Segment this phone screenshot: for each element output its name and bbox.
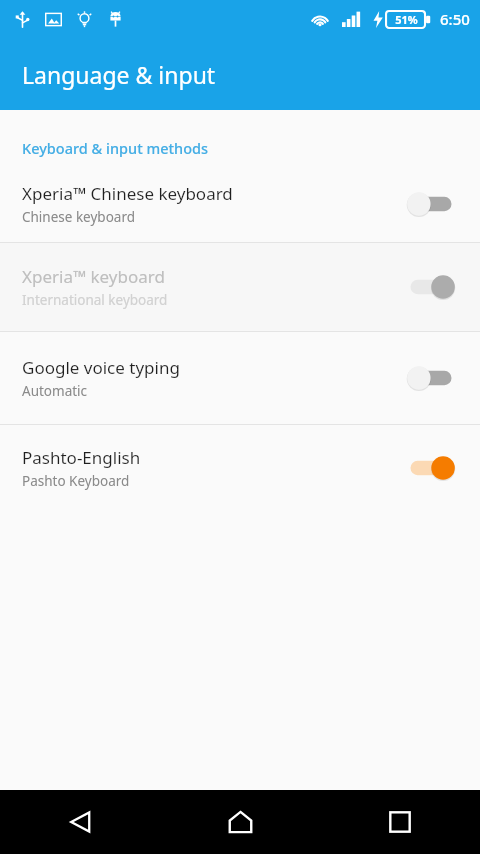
button[interactable]: Pashto-English — [0, 425, 480, 511]
button[interactable]: Google voice typing — [0, 332, 480, 424]
staticText: Automatic — [22, 382, 88, 400]
button[interactable]: Toggle keyboard — [404, 270, 458, 304]
button[interactable]: Toggle keyboard — [404, 361, 458, 395]
staticText: Pashto Keyboard — [22, 472, 130, 490]
button[interactable]: Xperia™ keyboard — [0, 243, 480, 331]
button[interactable]: Recent apps — [320, 790, 480, 854]
staticText: Chinese keyboard — [22, 208, 135, 226]
button[interactable]: Toggle keyboard — [404, 187, 458, 221]
button[interactable]: Home — [160, 790, 320, 854]
staticText: Xperia™ keyboard — [22, 265, 165, 288]
button[interactable]: Toggle keyboard — [404, 451, 458, 485]
staticText: Pashto-English — [22, 446, 141, 469]
button[interactable]: Back — [0, 790, 160, 854]
staticText: Google voice typing — [22, 356, 180, 379]
staticText: International keyboard — [22, 291, 168, 309]
button[interactable]: Xperia™ Chinese keyboard — [0, 166, 480, 242]
staticText: Keyboard & input methods — [22, 138, 209, 158]
staticText: Language & input — [22, 59, 216, 90]
staticText: 51% — [395, 12, 418, 27]
staticText: 6:50 — [440, 9, 470, 29]
staticText: Xperia™ Chinese keyboard — [22, 182, 233, 205]
